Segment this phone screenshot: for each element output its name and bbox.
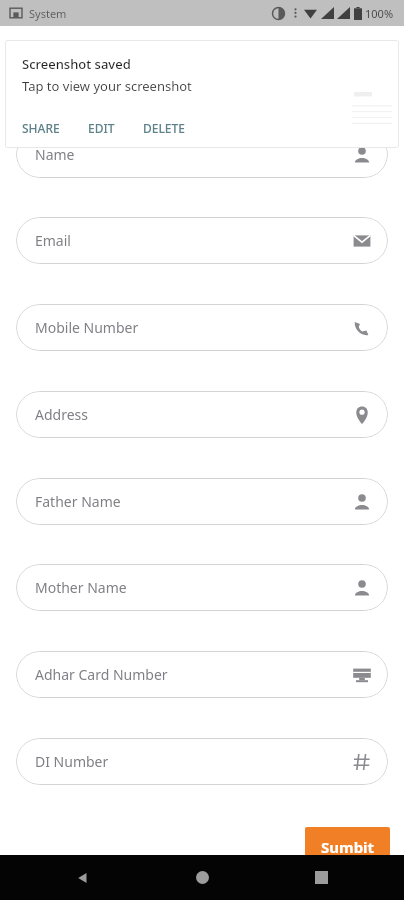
staticText: Mother Name [35,578,127,597]
button[interactable]: Mobile Number [16,304,388,351]
staticText: DELETE [143,120,185,136]
staticText: 100% [365,6,394,21]
staticText: DI Number [35,752,109,771]
staticText: Sumbit [321,837,375,857]
button[interactable]: SHARE [22,120,88,136]
staticText: Name [35,145,75,164]
staticText: Father Name [35,492,121,511]
button[interactable]: Address [16,391,388,438]
button[interactable]: Back [75,870,91,886]
staticText: Mobile Number [35,318,139,337]
button[interactable]: Mother Name [16,564,388,611]
button[interactable]: EDIT [88,120,143,136]
button[interactable]: Email [16,217,388,264]
button[interactable]: DI Number [16,738,388,785]
button[interactable]: DELETE [143,120,185,136]
button[interactable]: Adhar Card Number [16,651,388,698]
staticText: Screenshot saved [22,55,131,73]
button[interactable]: Name [16,131,388,178]
staticText: System [29,6,67,21]
staticText: SHARE [22,120,60,136]
staticText: Email [35,231,71,250]
button[interactable]: Father Name [16,478,388,525]
staticText: EDIT [88,120,115,136]
staticText: Tap to view your screenshot [22,77,192,95]
staticText: Address [35,405,88,424]
button[interactable]: Screenshot saved [5,40,399,148]
button[interactable]: Home [196,871,209,884]
button[interactable]: Sumbit [305,827,390,867]
staticText: Adhar Card Number [35,665,168,684]
